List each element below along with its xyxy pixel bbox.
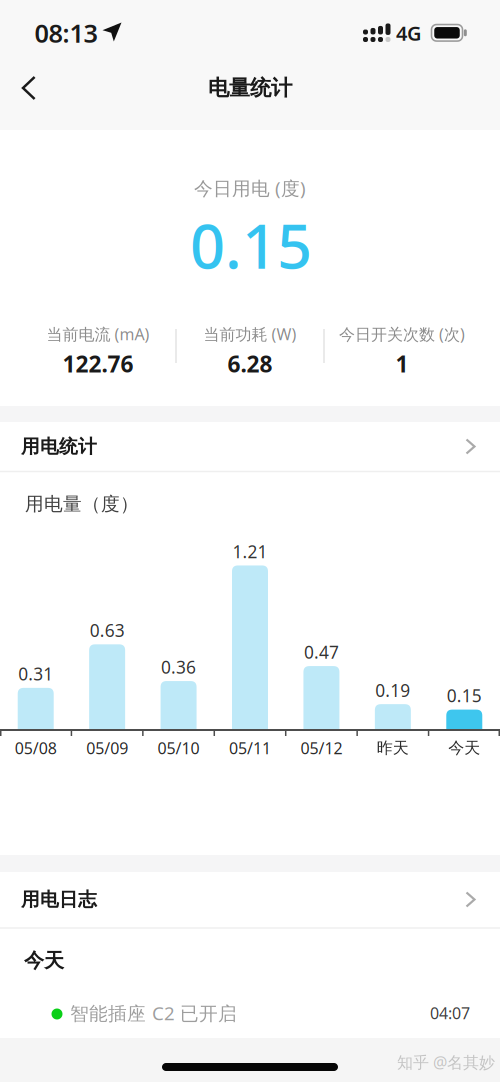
staticText: 今天 [448, 738, 480, 758]
button[interactable]: 用电日志 [0, 872, 500, 927]
staticText: 0.36 [161, 655, 196, 678]
staticText: 1 [395, 349, 408, 379]
staticText: 用电统计 [21, 435, 97, 458]
staticText: 今天 [24, 948, 64, 973]
staticText: 4G [396, 20, 422, 46]
staticText: 昨天 [377, 738, 409, 758]
staticText: 08:13 [34, 16, 97, 50]
staticText: 知乎 @名其妙 [397, 1051, 495, 1073]
staticText: 05/09 [86, 737, 128, 759]
staticText: 05/10 [158, 737, 200, 759]
button[interactable]: Back [6, 63, 52, 113]
staticText: 1.21 [232, 540, 267, 563]
staticText: 05/11 [229, 737, 271, 759]
staticText: 0.63 [90, 619, 125, 642]
staticText: 0.19 [375, 679, 410, 702]
staticText: 0.15 [447, 684, 482, 707]
staticText: 05/08 [15, 737, 57, 759]
staticText: 当前电流 (mA) [46, 323, 149, 344]
staticText: 今日用电 (度) [194, 176, 306, 200]
staticText: 智能插座 C2 已开启 [70, 1001, 237, 1025]
staticText: 今日开关次数 (次) [339, 323, 465, 344]
staticText: 0.47 [304, 641, 339, 664]
staticText: 用电量（度） [25, 492, 139, 515]
button[interactable]: 用电统计 [0, 422, 500, 471]
staticText: 6.28 [227, 349, 272, 379]
staticText: 04:07 [430, 1002, 470, 1024]
staticText: 0.15 [190, 204, 312, 286]
staticText: 当前功耗 (W) [203, 323, 296, 344]
staticText: 电量统计 [208, 75, 292, 101]
staticText: 0.31 [18, 662, 53, 685]
staticText: 05/12 [300, 737, 342, 759]
staticText: 122.76 [62, 349, 133, 379]
staticText: 用电日志 [21, 888, 97, 911]
